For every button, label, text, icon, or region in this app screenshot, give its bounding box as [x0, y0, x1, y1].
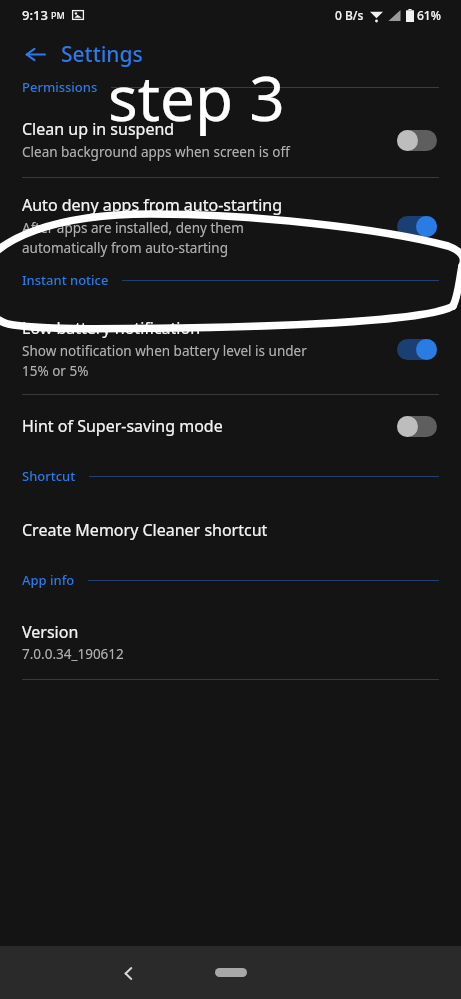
staticText: Clean up in suspend: [22, 118, 175, 140]
staticText: step 3: [108, 55, 285, 139]
button[interactable]: Back: [18, 37, 52, 71]
button[interactable]: Clean up in suspend: [0, 118, 461, 161]
button[interactable]: Toggle on: [393, 213, 441, 239]
staticText: Settings: [61, 40, 143, 69]
button[interactable]: Toggle off: [393, 127, 441, 153]
staticText: 0 B/s: [335, 7, 364, 23]
button[interactable]: Home: [215, 968, 247, 977]
button[interactable]: Toggle on: [393, 336, 441, 362]
staticText: 7.0.0.34_190612: [22, 645, 124, 663]
staticText: After apps are installed, deny them auto…: [22, 219, 244, 257]
staticText: Version: [22, 621, 79, 643]
staticText: Low battery notification: [22, 317, 201, 339]
staticText: PM: [51, 9, 65, 21]
button[interactable]: Auto deny apps from auto-starting: [0, 194, 461, 257]
staticText: App info: [22, 571, 75, 589]
staticText: 61%: [417, 7, 441, 23]
button[interactable]: Low battery notification: [0, 317, 461, 380]
button[interactable]: Create Memory Cleaner shortcut: [0, 519, 461, 541]
staticText: Clean background apps when screen is off: [22, 143, 290, 161]
staticText: Create Memory Cleaner shortcut: [22, 519, 268, 541]
button[interactable]: Back: [112, 956, 146, 990]
staticText: 9:13: [22, 6, 48, 24]
staticText: Show notification when battery level is …: [22, 342, 307, 380]
staticText: Hint of Super-saving mode: [22, 415, 223, 437]
button[interactable]: Toggle off: [393, 413, 441, 439]
staticText: Instant notice: [22, 271, 109, 289]
button[interactable]: Version: [0, 621, 461, 663]
staticText: Permissions: [22, 78, 98, 96]
staticText: Auto deny apps from auto-starting: [22, 194, 283, 216]
button[interactable]: Hint of Super-saving mode: [0, 413, 461, 439]
staticText: Shortcut: [22, 467, 76, 485]
